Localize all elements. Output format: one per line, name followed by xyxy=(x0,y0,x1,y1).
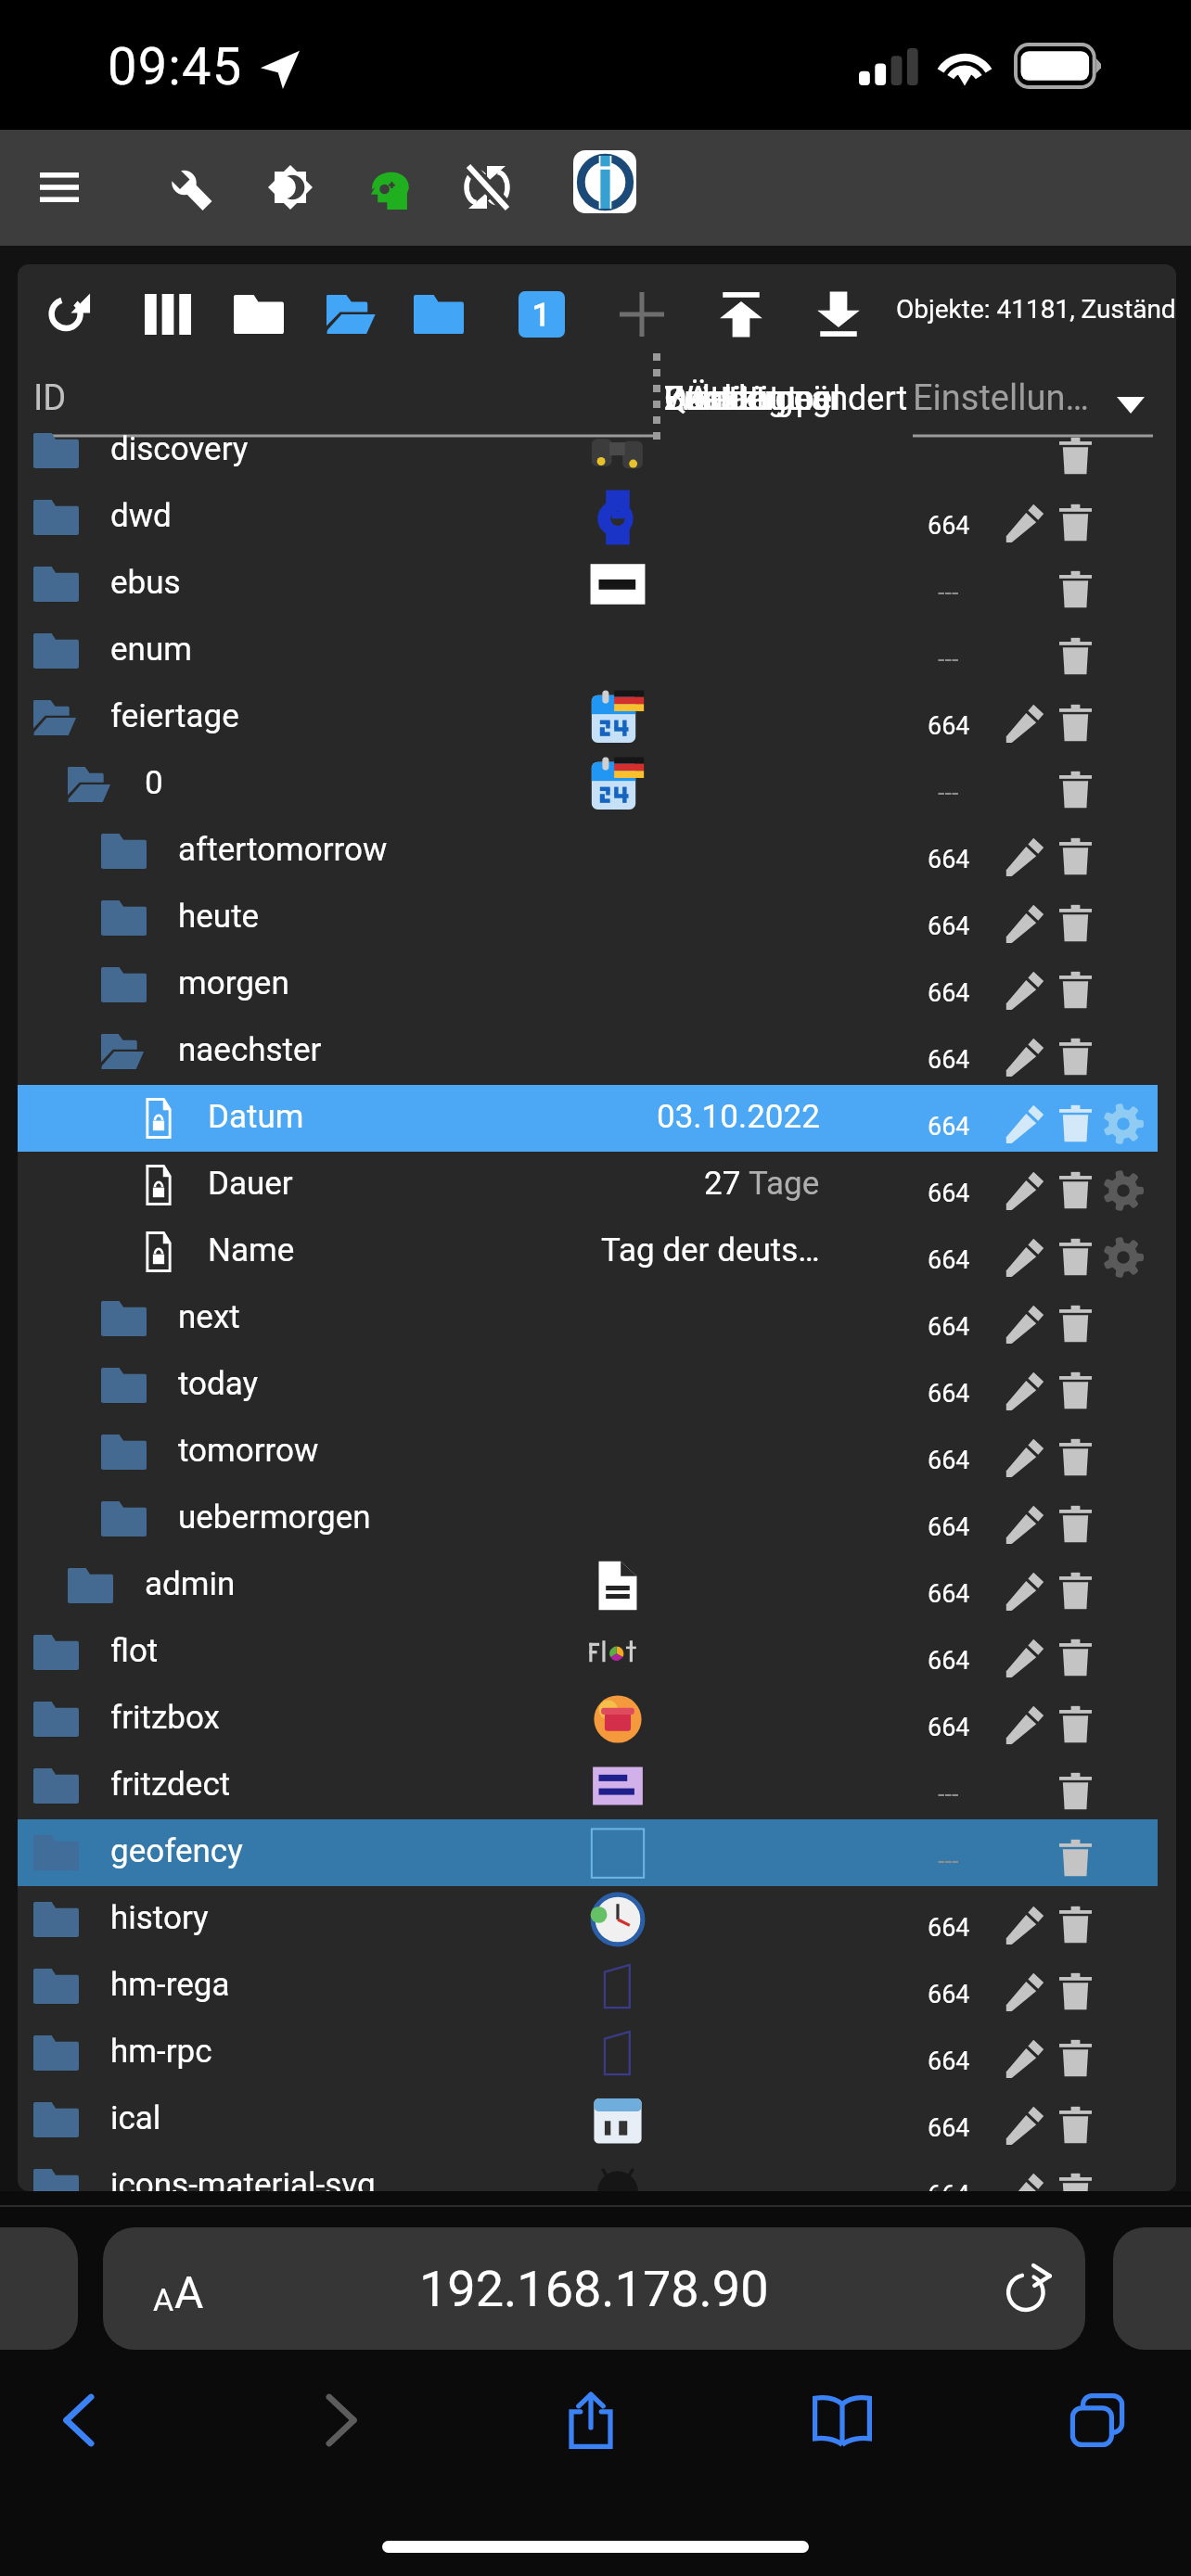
button[interactable]: Edit xyxy=(1005,1371,1044,1410)
button[interactable]: Edit xyxy=(1005,1572,1044,1611)
button[interactable] xyxy=(18,2153,1158,2191)
button[interactable]: Delete xyxy=(1059,1238,1092,1277)
button[interactable]: Delete xyxy=(1059,904,1092,943)
button[interactable] xyxy=(18,1419,1158,1486)
button[interactable]: A xyxy=(103,2227,1085,2350)
button[interactable]: Expert mode xyxy=(358,155,423,220)
button[interactable]: Delete xyxy=(1059,771,1092,810)
button[interactable]: Delete xyxy=(1059,1839,1092,1878)
button[interactable]: Share xyxy=(537,2372,645,2468)
button[interactable]: Folders xyxy=(407,283,470,346)
button[interactable]: Delete xyxy=(1059,1705,1092,1744)
button[interactable] xyxy=(18,1819,1158,1886)
staticText: Tag der deuts… xyxy=(601,1231,820,1269)
button[interactable] xyxy=(18,1285,1158,1352)
button[interactable]: Edit xyxy=(1005,1906,1044,1945)
button[interactable]: Bookmarks xyxy=(788,2372,896,2468)
button[interactable]: Delete xyxy=(1059,504,1092,542)
button[interactable]: Settings xyxy=(1103,1237,1144,1278)
button[interactable]: Delete xyxy=(1059,1906,1092,1945)
button[interactable]: Delete xyxy=(1059,1104,1092,1143)
button[interactable]: Edit xyxy=(1005,2039,1044,2078)
button[interactable]: Delete xyxy=(1059,1639,1092,1677)
button[interactable]: Delete xyxy=(1059,971,1092,1010)
button[interactable] xyxy=(18,818,1158,885)
button[interactable]: Edit xyxy=(1005,1705,1044,1744)
button[interactable] xyxy=(18,1152,1158,1218)
button[interactable]: ioBroker xyxy=(573,150,636,213)
button[interactable]: Theme xyxy=(258,155,323,220)
button[interactable]: Edit xyxy=(1005,1104,1044,1143)
button[interactable]: Import xyxy=(710,283,773,346)
button[interactable]: Delete xyxy=(1059,437,1092,476)
button[interactable]: Depth xyxy=(519,291,565,338)
button[interactable]: Edit xyxy=(1005,1438,1044,1477)
button[interactable] xyxy=(18,1753,1158,1819)
button[interactable]: Settings xyxy=(1103,1103,1144,1144)
button[interactable] xyxy=(18,1486,1158,1552)
button[interactable]: Delete xyxy=(1059,1772,1092,1811)
button[interactable] xyxy=(18,1686,1158,1753)
button[interactable]: Columns xyxy=(136,283,199,346)
button[interactable] xyxy=(18,484,1158,551)
button[interactable] xyxy=(18,417,1158,484)
button[interactable]: Edit xyxy=(1005,837,1044,876)
button[interactable]: Edit xyxy=(1005,704,1044,743)
button[interactable]: Refresh xyxy=(37,283,100,346)
button[interactable]: Delete xyxy=(1059,704,1092,743)
button[interactable]: Delete xyxy=(1059,570,1092,609)
button[interactable]: Export xyxy=(807,283,870,346)
button[interactable]: Delete xyxy=(1059,1038,1092,1077)
button[interactable]: Collapse xyxy=(227,283,290,346)
button[interactable]: Delete xyxy=(1059,1171,1092,1210)
button[interactable]: Edit xyxy=(1005,2106,1044,2145)
button[interactable]: Edit xyxy=(1005,2173,1044,2191)
button[interactable] xyxy=(18,1619,1158,1686)
button[interactable]: Settings xyxy=(1103,1170,1144,1211)
button[interactable] xyxy=(18,1953,1158,2020)
button[interactable] xyxy=(18,885,1158,951)
button[interactable]: Edit xyxy=(1005,1505,1044,1544)
button[interactable]: Edit xyxy=(1005,1305,1044,1344)
button[interactable]: Delete xyxy=(1059,1572,1092,1611)
button[interactable]: Edit xyxy=(1005,1972,1044,2011)
button[interactable]: Delete xyxy=(1059,637,1092,676)
button[interactable]: Add xyxy=(610,283,673,346)
button[interactable]: Delete xyxy=(1059,2039,1092,2078)
button[interactable] xyxy=(18,684,1158,751)
button[interactable]: Sync off xyxy=(455,155,519,220)
button[interactable]: Settings xyxy=(157,155,222,220)
button[interactable]: Delete xyxy=(1059,1972,1092,2011)
button[interactable]: Delete xyxy=(1059,2106,1092,2145)
button[interactable] xyxy=(18,751,1158,818)
button[interactable] xyxy=(18,1352,1158,1419)
button[interactable]: Tabs xyxy=(1044,2372,1151,2468)
button[interactable]: Edit xyxy=(1005,1038,1044,1077)
button[interactable]: Delete xyxy=(1059,1438,1092,1477)
button[interactable]: Edit xyxy=(1005,904,1044,943)
button[interactable] xyxy=(18,1085,1158,1152)
button[interactable]: Delete xyxy=(1059,2173,1092,2191)
button[interactable]: Expand xyxy=(321,283,384,346)
button[interactable]: Forward xyxy=(286,2372,393,2468)
button[interactable]: Delete xyxy=(1059,1371,1092,1410)
button[interactable] xyxy=(18,1552,1158,1619)
button[interactable]: Delete xyxy=(1059,1505,1092,1544)
button[interactable] xyxy=(18,1886,1158,1953)
button[interactable]: Edit xyxy=(1005,1639,1044,1677)
button[interactable]: Delete xyxy=(1059,1305,1092,1344)
button[interactable]: Delete xyxy=(1059,837,1092,876)
button[interactable]: Edit xyxy=(1005,1171,1044,1210)
button[interactable] xyxy=(18,1218,1158,1285)
button[interactable] xyxy=(18,2086,1158,2153)
button[interactable] xyxy=(18,551,1158,618)
button[interactable]: Menu xyxy=(27,155,92,220)
button[interactable]: Back xyxy=(27,2372,134,2468)
button[interactable] xyxy=(18,1018,1158,1085)
button[interactable]: Edit xyxy=(1005,1238,1044,1277)
button[interactable]: Edit xyxy=(1005,971,1044,1010)
button[interactable] xyxy=(18,951,1158,1018)
button[interactable] xyxy=(18,2020,1158,2086)
button[interactable]: Edit xyxy=(1005,504,1044,542)
button[interactable] xyxy=(18,618,1158,684)
